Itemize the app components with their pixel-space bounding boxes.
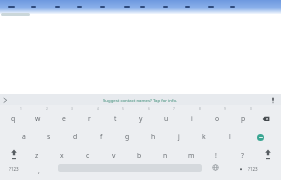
button[interactable] [55, 6, 60, 8]
staticText: 2 [46, 107, 48, 111]
staticText: 9 [224, 107, 226, 111]
staticText: e [62, 114, 66, 123]
button[interactable] [263, 148, 273, 161]
staticText: w [35, 114, 41, 123]
button[interactable]: , [28, 162, 50, 178]
button[interactable]: ? [231, 147, 253, 163]
button[interactable] [140, 6, 145, 8]
button[interactable] [262, 116, 271, 123]
button[interactable] [208, 6, 214, 8]
button[interactable] [230, 6, 235, 8]
staticText: ! [215, 151, 217, 160]
staticText: x [60, 151, 64, 160]
staticText: j [178, 132, 180, 141]
button[interactable]: ?123 [3, 161, 25, 177]
button[interactable]: h [142, 128, 164, 144]
button[interactable]: o [206, 110, 228, 126]
staticText: d [73, 132, 78, 141]
staticText: ? [241, 151, 244, 160]
button[interactable]: b [128, 147, 150, 163]
staticText: a [22, 132, 26, 141]
staticText: , [38, 166, 40, 175]
button[interactable] [31, 6, 36, 8]
staticText: 3 [71, 107, 73, 111]
button[interactable] [269, 96, 277, 105]
staticText: l [229, 132, 231, 141]
staticText: o [215, 114, 220, 123]
staticText: r [88, 114, 91, 123]
staticText: 4 [97, 107, 99, 111]
button[interactable] [100, 6, 105, 8]
staticText: 7 [173, 107, 175, 111]
button[interactable]: l [219, 128, 241, 144]
staticText: c [86, 151, 90, 160]
staticText: z [35, 151, 39, 160]
button[interactable]: c [77, 147, 99, 163]
button[interactable]: w [27, 110, 49, 126]
staticText: k [202, 132, 206, 141]
staticText: u [164, 114, 169, 123]
button[interactable]: s [38, 128, 60, 144]
button[interactable] [185, 6, 190, 8]
staticText: m [188, 151, 195, 160]
button[interactable]: e [53, 110, 75, 126]
button[interactable]: m [180, 147, 202, 163]
staticText: t [114, 114, 117, 123]
button[interactable]: ! [205, 147, 227, 163]
button[interactable] [8, 6, 15, 8]
button[interactable]: v [103, 147, 125, 163]
button[interactable]: n [154, 147, 176, 163]
button[interactable]: q [2, 110, 24, 126]
button[interactable]: k [193, 128, 215, 144]
staticText: 0 [250, 107, 252, 111]
staticText: i [191, 114, 193, 123]
staticText: Suggest contact names? Tap for info. [103, 97, 178, 103]
button[interactable] [9, 148, 19, 161]
staticText: 5 [122, 107, 124, 111]
button[interactable]: d [64, 128, 86, 144]
staticText: p [241, 114, 246, 123]
staticText: g [125, 132, 130, 141]
button[interactable] [257, 134, 264, 141]
button[interactable] [124, 6, 130, 8]
staticText: n [163, 151, 168, 160]
button[interactable]: a [13, 128, 35, 144]
staticText: s [47, 132, 51, 141]
button[interactable] [211, 163, 220, 172]
button[interactable]: t [104, 110, 126, 126]
button[interactable] [163, 6, 168, 8]
button[interactable] [2, 97, 9, 104]
staticText: 6 [148, 107, 150, 111]
button[interactable]: y [130, 110, 152, 126]
staticText: f [100, 132, 103, 141]
staticText: q [11, 114, 16, 123]
staticText: 8 [199, 107, 201, 111]
button[interactable]: r [78, 110, 100, 126]
button[interactable] [77, 6, 82, 8]
staticText: h [151, 132, 156, 141]
button[interactable]: u [155, 110, 177, 126]
button[interactable]: z [26, 147, 48, 163]
staticText: ?123 [248, 166, 258, 172]
staticText: 1 [20, 107, 22, 111]
button[interactable]: j [168, 128, 190, 144]
button[interactable]: x [51, 147, 73, 163]
staticText: ?123 [9, 166, 19, 172]
button[interactable]: p [232, 110, 254, 126]
button[interactable]: i [181, 110, 203, 126]
button[interactable]: g [116, 128, 138, 144]
staticText: b [137, 151, 142, 160]
staticText: y [139, 114, 143, 123]
staticText: v [112, 151, 116, 160]
button[interactable]: ?123 [242, 161, 264, 177]
button[interactable] [238, 166, 244, 172]
button[interactable]: f [90, 128, 112, 144]
